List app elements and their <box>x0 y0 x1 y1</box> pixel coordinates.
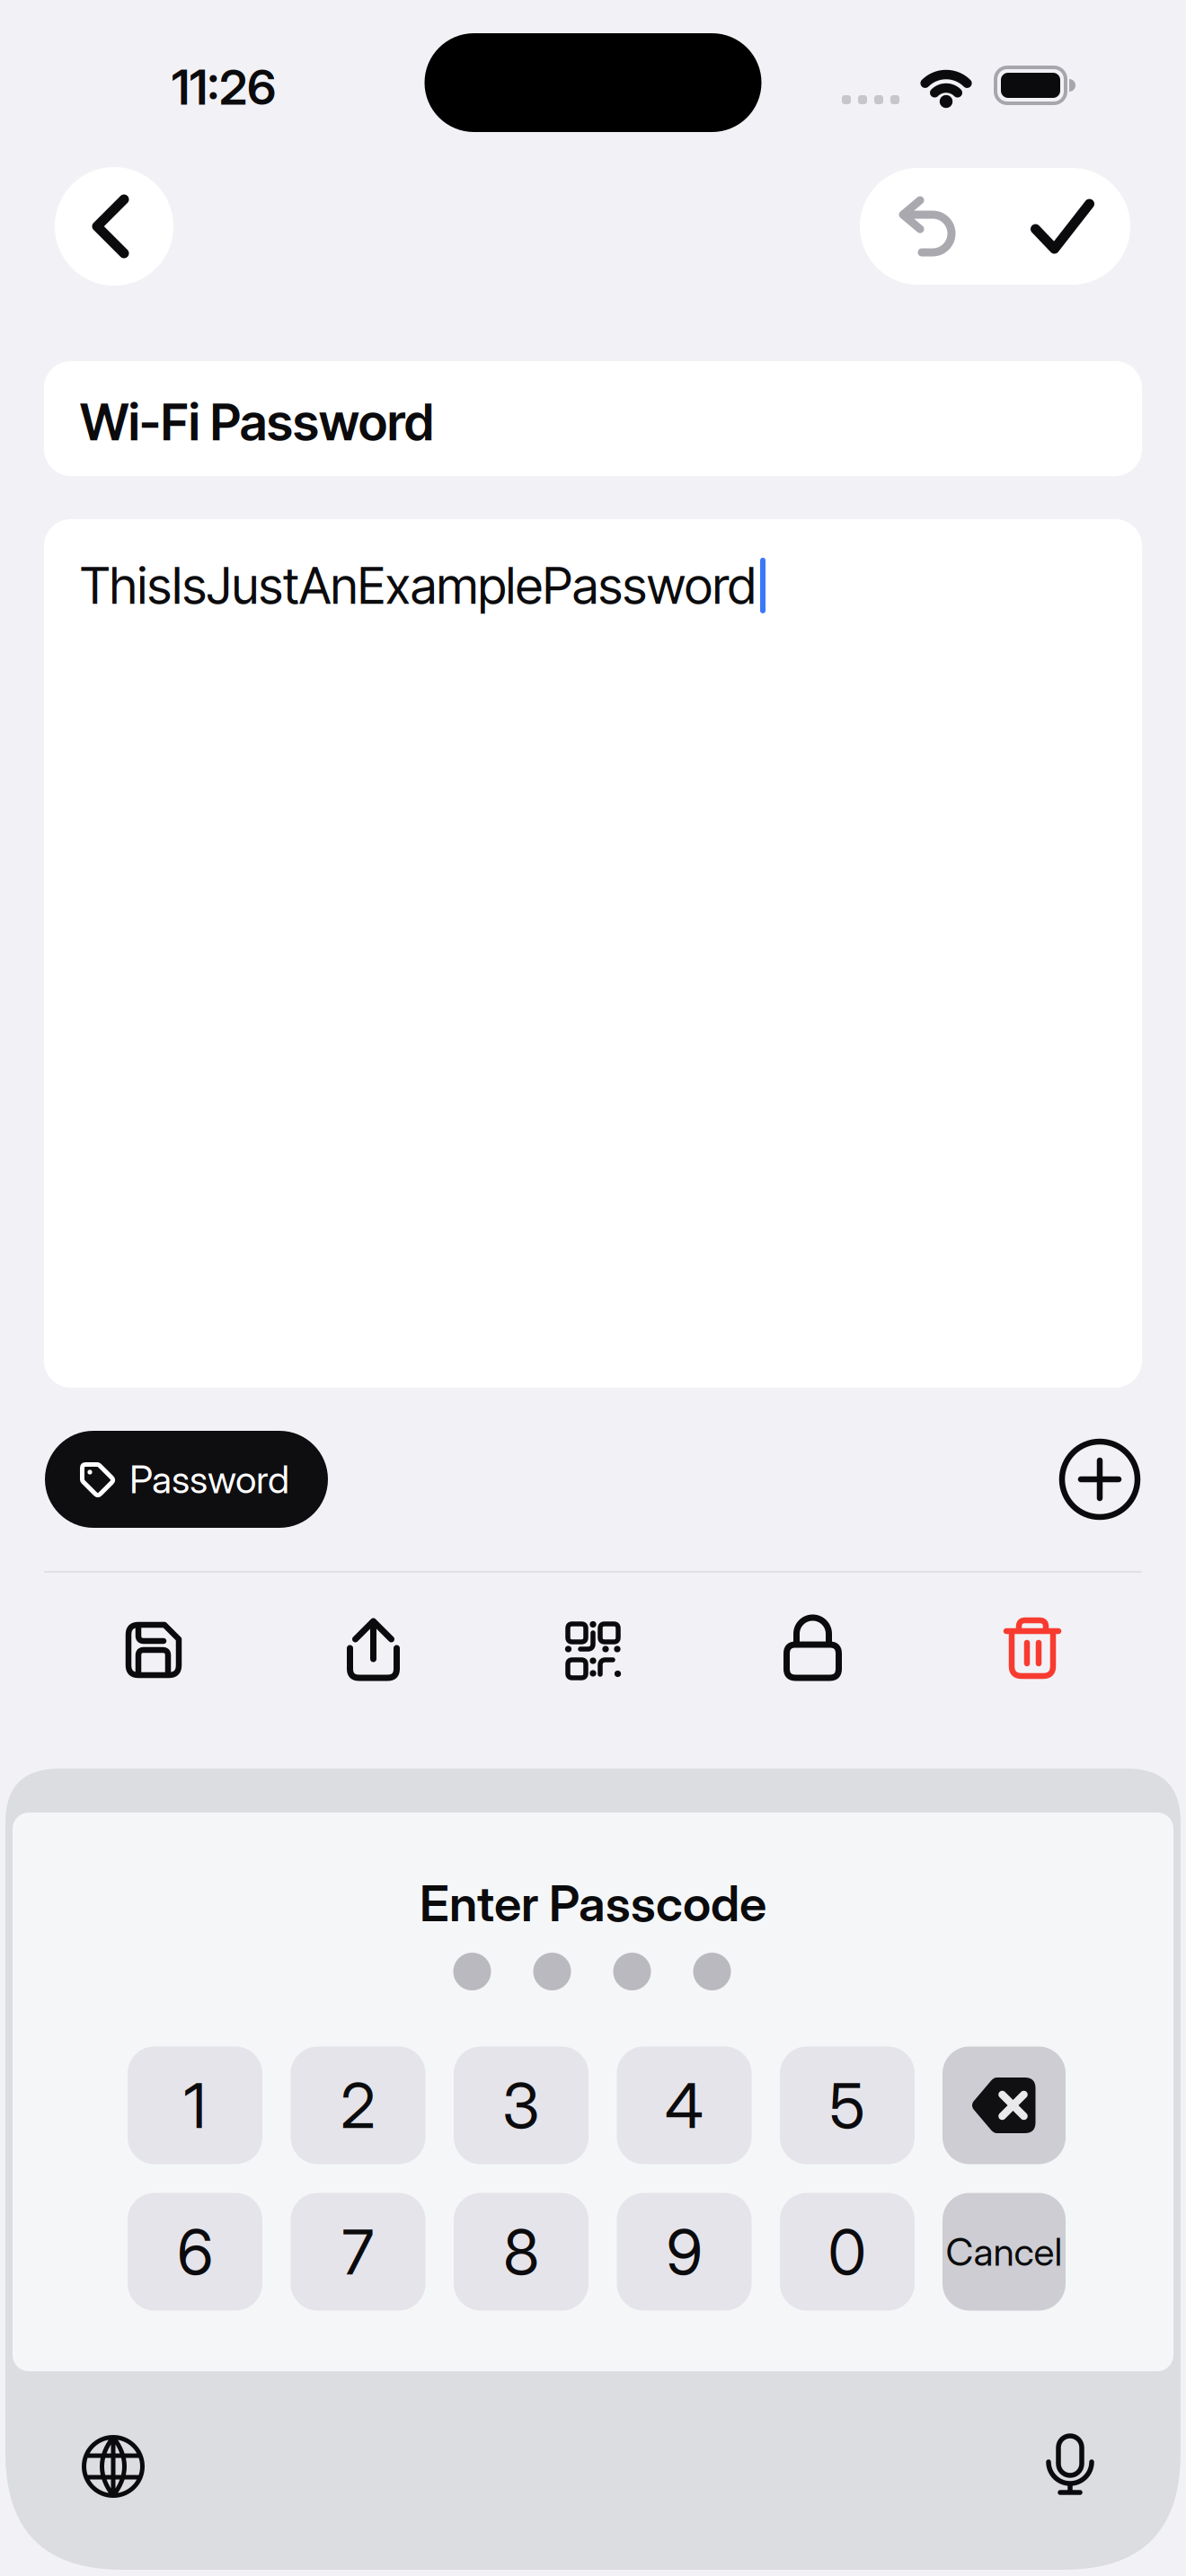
button[interactable] <box>270 1586 477 1712</box>
staticText: 7 <box>342 2214 374 2289</box>
button[interactable]: 0 <box>780 2193 915 2311</box>
staticText: ThisIsJustAnExamplePassword <box>80 555 756 616</box>
button[interactable] <box>1016 2411 1124 2519</box>
staticText: 8 <box>503 2214 539 2289</box>
button[interactable]: 7 <box>291 2193 425 2311</box>
button[interactable]: 5 <box>780 2047 915 2164</box>
staticText: Wi-Fi Password <box>80 392 434 453</box>
button[interactable] <box>55 167 173 286</box>
button[interactable] <box>995 168 1130 285</box>
staticText: Cancel <box>946 2229 1062 2275</box>
button[interactable] <box>929 1585 1136 1711</box>
button[interactable]: Cancel <box>943 2193 1066 2311</box>
button[interactable] <box>1062 1442 1137 1517</box>
button[interactable]: 8 <box>454 2193 589 2311</box>
button[interactable] <box>860 168 995 285</box>
staticText: Enter Passcode <box>420 1874 766 1933</box>
staticText: 1 <box>184 2068 206 2143</box>
staticText: 5 <box>829 2068 865 2143</box>
staticText: 9 <box>666 2214 702 2289</box>
button[interactable] <box>490 1586 696 1712</box>
button[interactable]: 9 <box>617 2193 752 2311</box>
button[interactable]: 4 <box>617 2047 752 2164</box>
staticText: Password <box>129 1456 289 1502</box>
button[interactable] <box>59 2413 167 2520</box>
staticText: 2 <box>341 2068 376 2143</box>
button[interactable]: 1 <box>128 2047 262 2164</box>
staticText: 0 <box>828 2214 867 2289</box>
button[interactable] <box>50 1587 257 1713</box>
staticText: 3 <box>502 2068 540 2143</box>
button[interactable]: 6 <box>128 2193 262 2311</box>
button[interactable]: Password <box>45 1431 328 1528</box>
button[interactable]: ThisIsJustAnExamplePassword <box>44 519 1142 1388</box>
button[interactable]: Wi-Fi Password <box>44 361 1142 476</box>
button[interactable] <box>709 1585 916 1711</box>
button[interactable]: 2 <box>291 2047 425 2164</box>
staticText: 11:26 <box>172 58 276 116</box>
staticText: 4 <box>665 2068 704 2143</box>
staticText: 6 <box>177 2214 213 2289</box>
button[interactable] <box>943 2047 1066 2164</box>
button[interactable]: 3 <box>454 2047 589 2164</box>
